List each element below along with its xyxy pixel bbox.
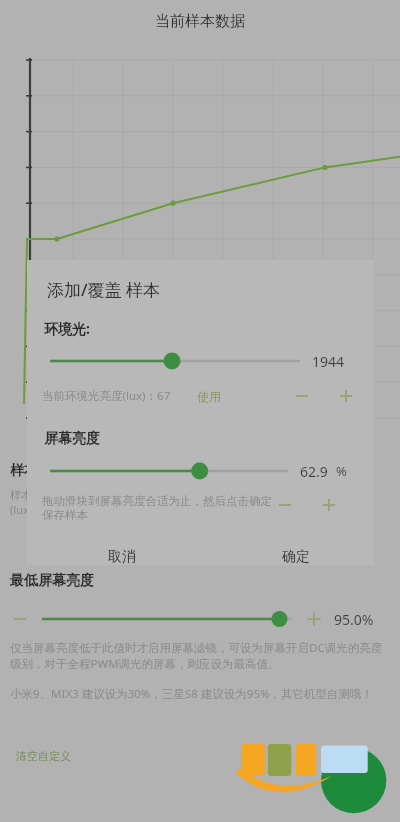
button[interactable]: Screen brightness slider [50,458,288,484]
staticText: 添加/覆盖 样本 [47,278,160,301]
button[interactable]: Minimum screen brightness slider [42,606,292,632]
staticText: 级别，对于全程PWM调光的屏幕，则应设为最高值。 [10,656,280,672]
staticText: 95.0% [334,610,374,629]
staticText: 当前样本数据 [155,12,245,31]
staticText: 清空自定义 [16,749,71,763]
staticText: 样本 [10,462,38,480]
button[interactable]: 使用 [197,389,221,404]
button[interactable]: Increase minimum brightness [302,607,326,631]
button[interactable]: Decrease screen brightness [274,494,296,516]
button[interactable]: 清空自定义 [16,749,71,763]
staticText: 屏幕亮度 [44,430,100,448]
button[interactable]: Decrease ambient light [291,385,313,407]
staticText: 使用 [197,389,221,404]
staticText: 样本 [10,488,32,502]
staticText: 小米9、MIX3 建议设为30%，三星S8 建议设为95%，其它机型自测哦！ [10,686,374,702]
button[interactable]: 确定 [217,548,374,565]
staticText: 62.9 [300,462,328,481]
staticText: 环境光: [44,319,90,338]
button[interactable]: Ambient light slider [50,348,300,374]
staticText: 最低屏幕亮度 [10,572,94,590]
button[interactable]: Increase screen brightness [318,494,340,516]
staticText: % [336,462,347,480]
staticText: (lux) [10,502,33,517]
staticText: 1944 [312,352,345,371]
staticText: 仅当屏幕亮度低于此值时才启用屏幕滤镜，可设为屏幕开启DC调光的亮度 [10,640,383,656]
staticText: 确定 [282,548,310,565]
button[interactable]: 取消 [27,548,217,565]
staticText: 取消 [108,548,136,565]
button[interactable]: Decrease minimum brightness [8,607,32,631]
staticText: 拖动滑块到屏幕亮度合适为止，然后点击确定 [42,494,272,508]
staticText: 当前环境光亮度(lux)：67 [42,388,171,404]
button[interactable]: Increase ambient light [335,385,357,407]
staticText: 保存样本 [42,508,88,522]
